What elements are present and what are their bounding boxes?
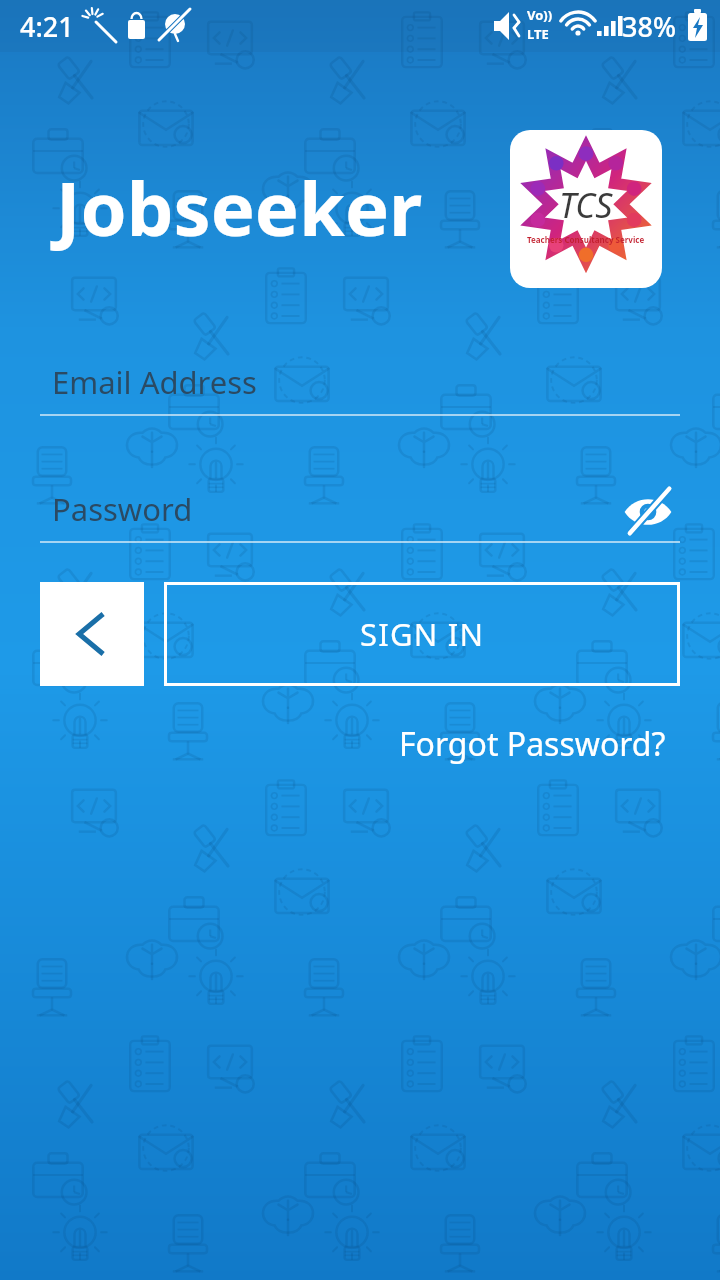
button[interactable]: Back [40, 582, 144, 686]
button[interactable]: Show password [616, 483, 680, 541]
staticText: Forgot Password? [399, 722, 666, 766]
staticText: TCS [559, 182, 613, 228]
staticText: Vo)) [527, 6, 553, 24]
staticText: Password [52, 488, 193, 530]
button[interactable]: Password [40, 483, 680, 541]
button[interactable]: Email Address [40, 356, 680, 414]
staticText: Email Address [52, 361, 257, 403]
staticText: SIGN IN [360, 613, 485, 655]
staticText: 4:21 [20, 8, 74, 45]
staticText: 38% [622, 8, 676, 45]
staticText: Jobseeker [56, 157, 423, 258]
staticText: Teachers Consultancy Service [527, 234, 645, 245]
staticText: LTE [527, 25, 549, 43]
button[interactable]: Forgot Password? [385, 714, 680, 774]
button[interactable]: SIGN IN [164, 582, 680, 686]
